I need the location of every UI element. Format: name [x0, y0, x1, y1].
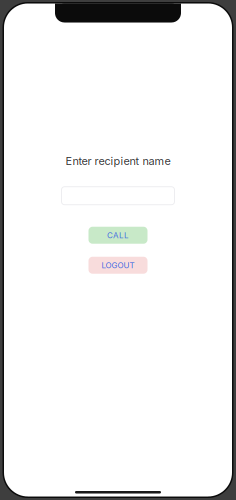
button[interactable]: CALL [88, 227, 147, 244]
staticText: Enter recipient name [65, 154, 170, 168]
button[interactable]: Recipient name [61, 187, 174, 205]
staticText: CALL [107, 230, 129, 240]
button[interactable]: LOGOUT [88, 257, 147, 274]
staticText: LOGOUT [101, 260, 134, 270]
